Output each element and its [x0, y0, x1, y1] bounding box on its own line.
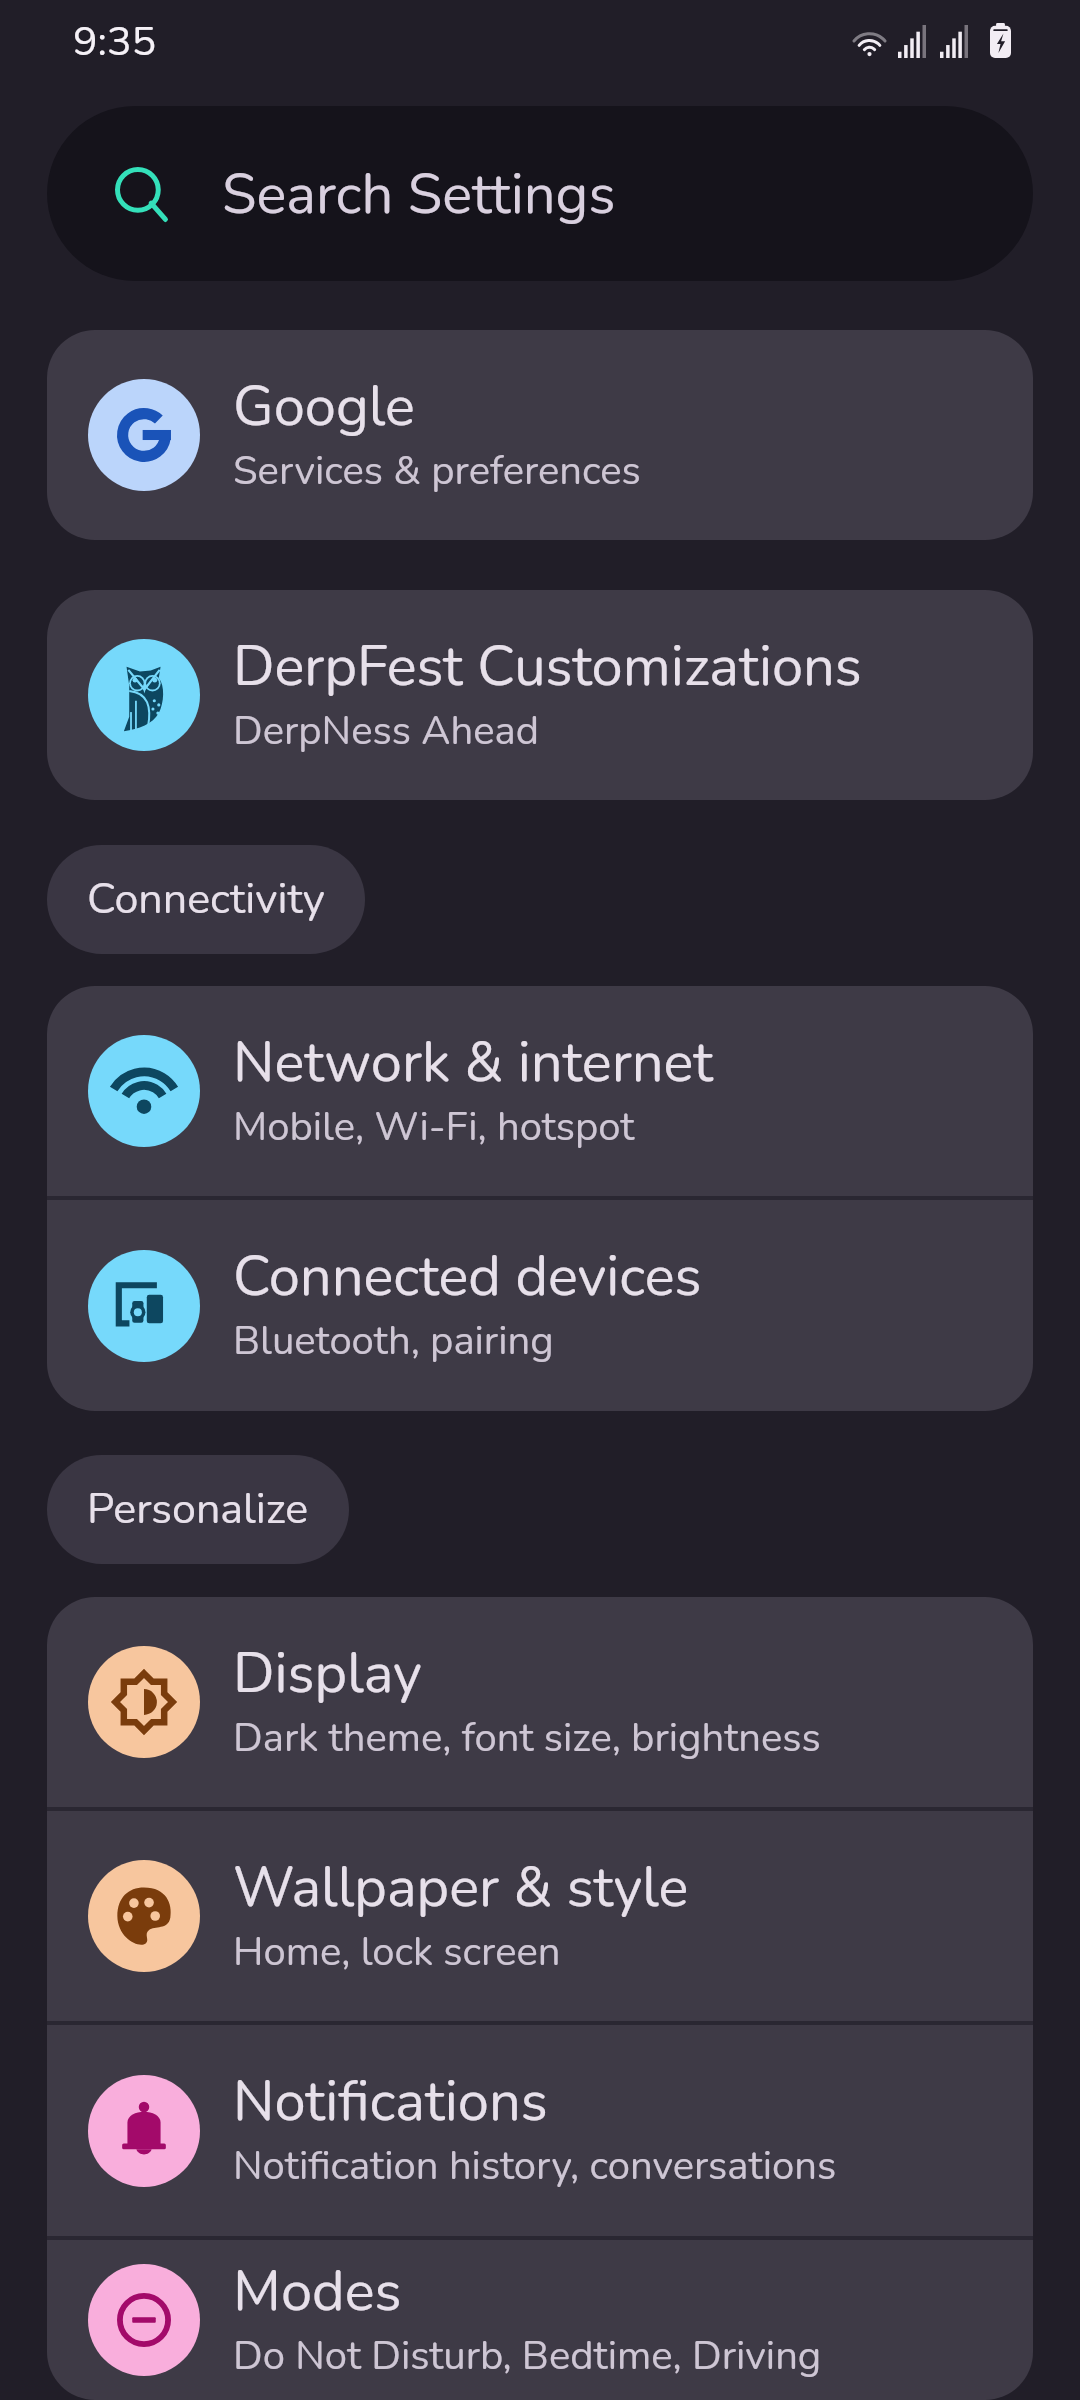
- staticText: Notification history, conversations: [233, 2139, 837, 2194]
- staticText: Services & preferences: [233, 444, 641, 499]
- staticText: Notifications: [233, 2063, 548, 2139]
- button[interactable]: Display: [47, 1597, 1033, 1807]
- staticText: 9:35: [73, 14, 157, 70]
- staticText: Network & internet: [233, 1024, 713, 1100]
- staticText: Bluetooth, pairing: [233, 1314, 554, 1369]
- button[interactable]: Personalize: [47, 1455, 349, 1564]
- staticText: Connected devices: [233, 1238, 702, 1314]
- staticText: Search Settings: [222, 156, 616, 232]
- button[interactable]: Network & internet: [47, 986, 1033, 1196]
- staticText: Wallpaper & style: [233, 1849, 689, 1925]
- button[interactable]: Search: [47, 106, 1033, 281]
- staticText: Google: [233, 368, 415, 444]
- staticText: Home, lock screen: [233, 1925, 561, 1980]
- staticText: Connectivity: [87, 870, 325, 929]
- button[interactable]: Wallpaper & style: [47, 1811, 1033, 2021]
- other: Mobile signal SIM 1: [898, 25, 926, 58]
- button[interactable]: Google: [47, 330, 1033, 540]
- staticText: Display: [233, 1635, 422, 1711]
- other: Search: [115, 168, 167, 220]
- staticText: Mobile, Wi-Fi, hotspot: [233, 1100, 635, 1155]
- staticText: Do Not Disturb, Bedtime, Driving: [233, 2329, 822, 2384]
- other: Mobile signal SIM 2: [940, 25, 968, 58]
- other: Wi-Fi signal: [849, 25, 890, 58]
- staticText: DerpFest Customizations: [233, 628, 862, 704]
- button[interactable]: DerpFest Customizations: [47, 590, 1033, 800]
- button[interactable]: Modes: [47, 2240, 1033, 2400]
- staticText: Personalize: [87, 1480, 309, 1539]
- other: Battery charging: [990, 23, 1011, 58]
- staticText: Dark theme, font size, brightness: [233, 1711, 821, 1766]
- staticText: Modes: [233, 2253, 402, 2329]
- button[interactable]: Connected devices: [47, 1200, 1033, 1411]
- staticText: DerpNess Ahead: [233, 704, 539, 759]
- button[interactable]: Notifications: [47, 2025, 1033, 2236]
- button[interactable]: Connectivity: [47, 845, 365, 954]
